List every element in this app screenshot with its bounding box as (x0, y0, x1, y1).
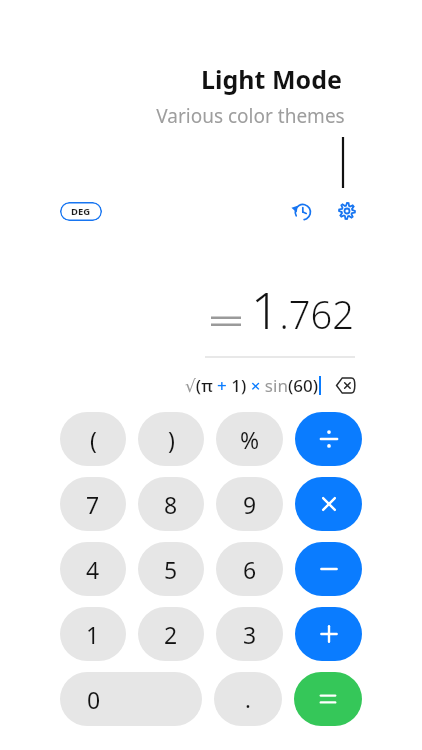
staticText: 3 (243, 619, 257, 650)
button[interactable]: Divide (295, 412, 362, 466)
staticText: 0 (87, 684, 101, 715)
button[interactable]: Add (295, 607, 362, 661)
button[interactable]: 6 (216, 542, 283, 596)
button[interactable]: History (286, 196, 316, 226)
staticText: 9 (243, 489, 257, 520)
staticText: % (240, 424, 260, 455)
staticText: 7 (86, 489, 100, 520)
button[interactable]: Equals (294, 672, 362, 726)
button[interactable]: % (216, 412, 283, 466)
staticText: 4 (86, 554, 100, 585)
staticText: Light Mode (201, 62, 342, 96)
button[interactable]: Subtract (295, 542, 362, 596)
staticText: Various color themes (156, 103, 345, 129)
button[interactable]: ( (60, 412, 126, 466)
staticText: 6 (243, 554, 257, 585)
staticText: ( (90, 424, 97, 455)
button[interactable]: 8 (138, 477, 204, 531)
button[interactable]: 5 (138, 542, 204, 596)
button[interactable]: . (214, 672, 282, 726)
staticText: ) (168, 424, 175, 455)
staticText: 1 (86, 619, 100, 650)
button[interactable]: Settings (332, 196, 362, 226)
staticText: . (245, 684, 251, 714)
staticText: 5 (164, 554, 178, 585)
button[interactable]: ) (138, 412, 204, 466)
button[interactable]: Backspace (332, 372, 358, 398)
button[interactable]: 1 (60, 607, 126, 661)
staticText: 2 (164, 619, 178, 650)
staticText: √(π + 1) × sin(60) (185, 374, 318, 397)
button[interactable]: 7 (60, 477, 126, 531)
button[interactable]: Multiply (295, 477, 362, 531)
button[interactable]: 0 (60, 672, 202, 726)
staticText: DEG (71, 205, 91, 218)
button[interactable]: 3 (216, 607, 283, 661)
staticText: 8 (164, 489, 178, 520)
button[interactable]: 2 (138, 607, 204, 661)
button[interactable]: DEG (60, 202, 102, 221)
button[interactable]: 9 (216, 477, 283, 531)
button[interactable]: 4 (60, 542, 126, 596)
staticText: 1.762 (251, 276, 354, 344)
